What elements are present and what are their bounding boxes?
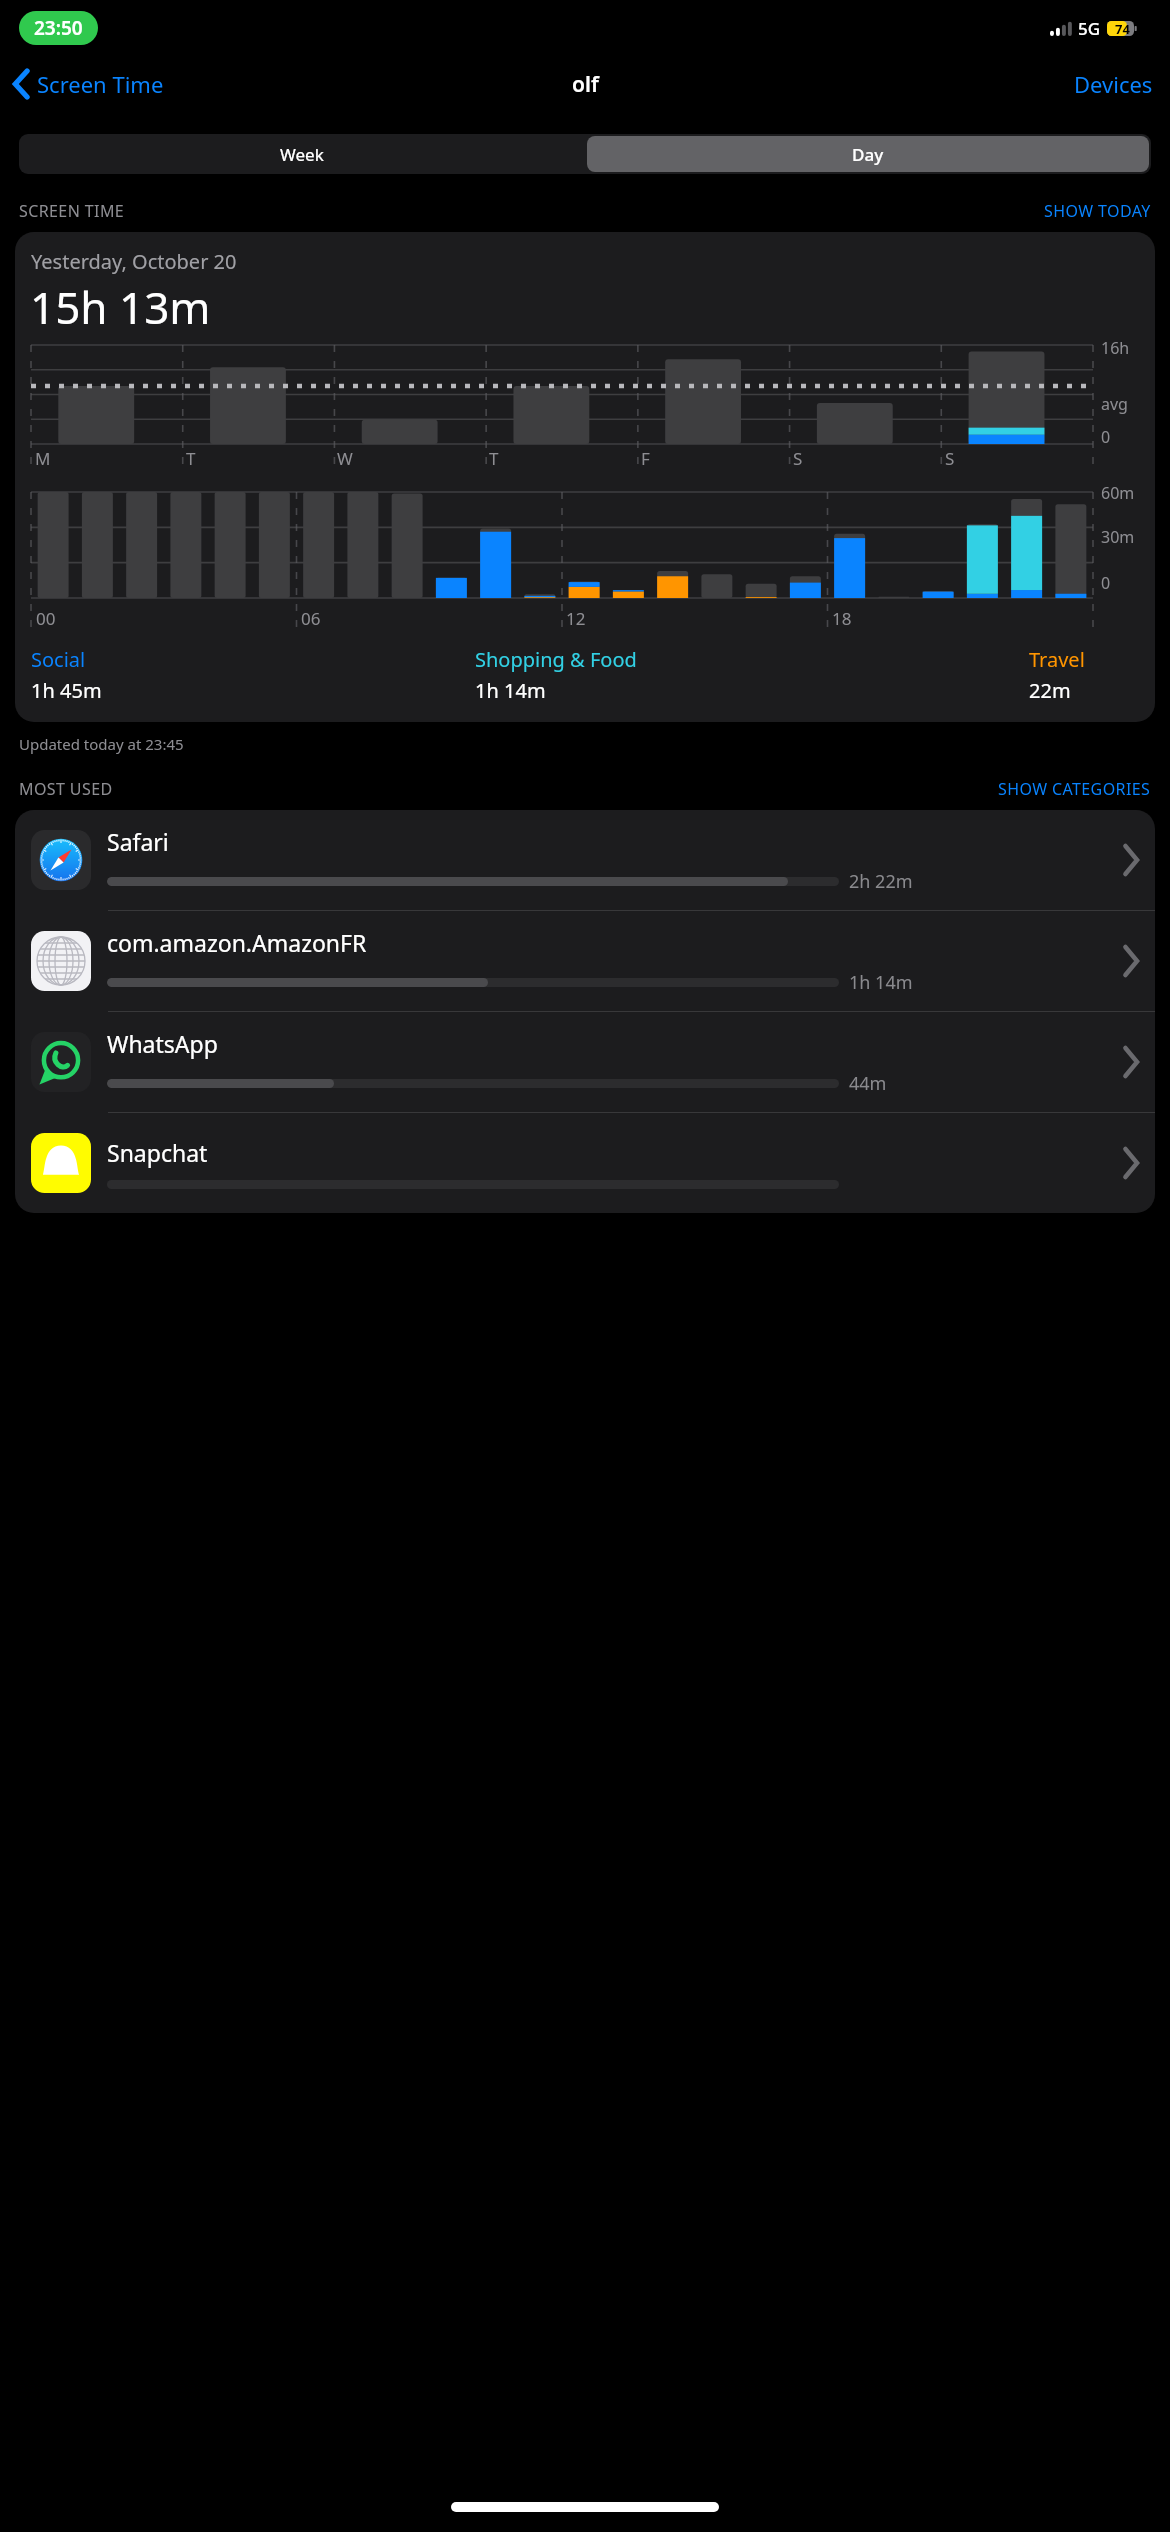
button[interactable]: com.amazon.AmazonFR: [15, 911, 1155, 1011]
button[interactable]: WhatsApp: [15, 1012, 1155, 1112]
button[interactable]: Screen Time: [10, 69, 168, 99]
staticText: 1h 14m: [849, 970, 913, 995]
staticText: Day: [852, 143, 884, 166]
other: com.amazon.AmazonFR details: [1123, 947, 1139, 975]
staticText: SHOW CATEGORIES: [998, 778, 1151, 800]
button[interactable]: Snapchat: [15, 1113, 1155, 1213]
staticText: Week: [280, 143, 324, 166]
staticText: Travel: [1029, 646, 1085, 673]
staticText: S: [945, 447, 955, 470]
staticText: Yesterday, October 20: [31, 248, 237, 275]
staticText: 1h 45m: [31, 677, 102, 704]
staticText: Snapchat: [107, 1137, 208, 1168]
staticText: 16h: [1101, 337, 1130, 359]
staticText: SCREEN TIME: [19, 200, 125, 222]
staticText: W: [337, 447, 353, 470]
staticText: MOST USED: [19, 778, 113, 800]
staticText: Shopping & Food: [475, 646, 637, 673]
button[interactable]: Devices: [1057, 63, 1170, 105]
staticText: Social: [31, 646, 86, 673]
other: Snapchat details: [1123, 1149, 1139, 1177]
button[interactable]: Safari: [15, 810, 1155, 910]
button[interactable]: Week: [19, 134, 585, 174]
staticText: Updated today at 23:45: [19, 734, 184, 754]
staticText: M: [35, 447, 51, 470]
staticText: 30m: [1101, 526, 1135, 548]
staticText: 44m: [849, 1071, 887, 1096]
button[interactable]: SHOW CATEGORIES: [998, 778, 1151, 800]
staticText: T: [489, 447, 499, 470]
staticText: 12: [566, 607, 586, 630]
staticText: 06: [301, 607, 321, 630]
staticText: avg: [1101, 393, 1128, 415]
staticText: 0: [1101, 426, 1111, 448]
staticText: 00: [36, 607, 56, 630]
staticText: 5G: [1078, 17, 1101, 40]
button[interactable]: Day: [587, 136, 1149, 172]
staticText: 2h 22m: [849, 869, 913, 894]
other: Safari details: [1123, 846, 1139, 874]
staticText: 18: [832, 607, 852, 630]
staticText: SHOW TODAY: [1044, 200, 1151, 222]
other: WhatsApp details: [1123, 1048, 1139, 1076]
staticText: T: [186, 447, 196, 470]
staticText: 23:50: [34, 15, 83, 41]
staticText: Screen Time: [37, 69, 164, 99]
staticText: olf: [572, 70, 599, 99]
staticText: 15h 13m: [30, 277, 211, 337]
staticText: 22m: [1029, 677, 1071, 704]
staticText: 74: [1115, 20, 1130, 38]
staticText: 0: [1101, 572, 1111, 594]
staticText: Safari: [107, 826, 169, 857]
staticText: S: [793, 447, 803, 470]
button[interactable]: SHOW TODAY: [1044, 200, 1151, 222]
staticText: 1h 14m: [475, 677, 546, 704]
staticText: F: [641, 447, 650, 470]
staticText: WhatsApp: [107, 1028, 218, 1059]
staticText: com.amazon.AmazonFR: [107, 927, 367, 958]
staticText: 60m: [1101, 482, 1135, 504]
staticText: Devices: [1074, 69, 1153, 99]
